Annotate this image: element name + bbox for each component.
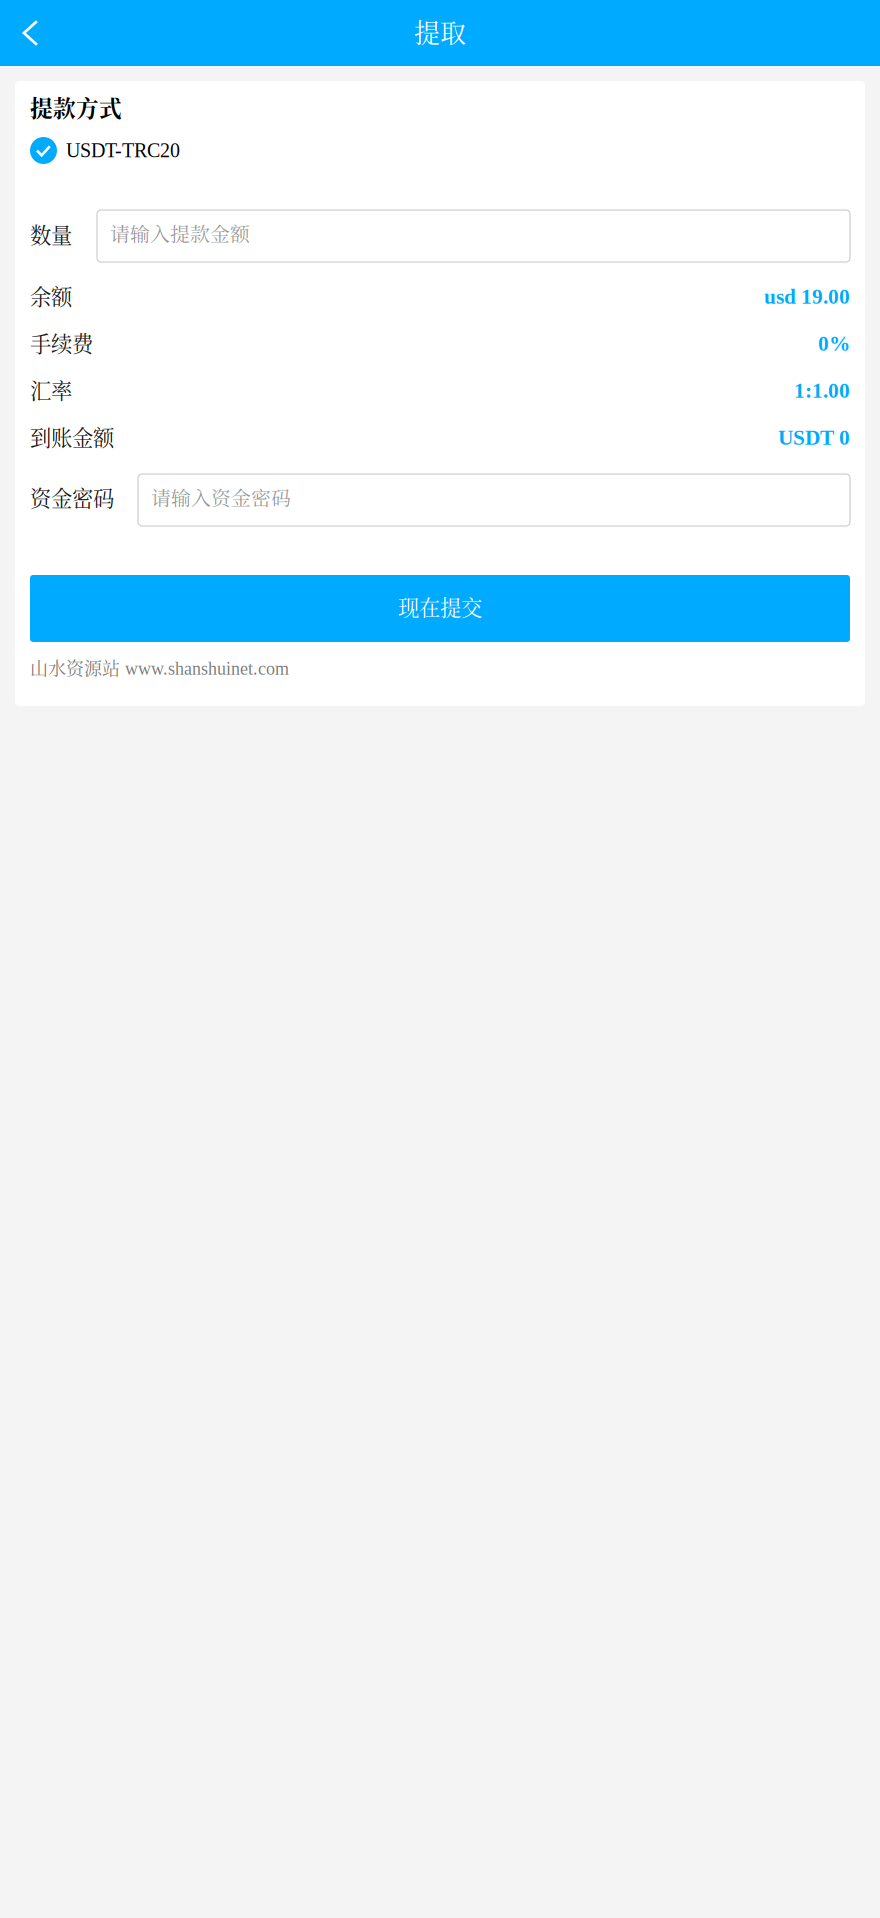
staticText: 手续费 xyxy=(30,327,93,358)
staticText: 余额 xyxy=(30,280,72,311)
staticText: 提款方式 xyxy=(30,91,122,123)
button[interactable]: 现在提交 xyxy=(30,575,850,642)
button[interactable]: USDT-TRC20 xyxy=(30,137,850,164)
button[interactable]: Back xyxy=(0,0,78,66)
staticText: USDT-TRC20 xyxy=(66,139,180,161)
staticText: 1:1.00 xyxy=(794,379,850,402)
staticText: 请输入提款金额 xyxy=(110,219,250,247)
staticText: 山水资源站 www.shanshuinet.com xyxy=(30,655,289,680)
staticText: 资金密码 xyxy=(30,482,114,512)
staticText: 0% xyxy=(818,332,850,355)
staticText: USDT 0 xyxy=(778,426,850,449)
staticText: 请输入资金密码 xyxy=(151,483,291,511)
staticText: usd 19.00 xyxy=(764,285,850,308)
staticText: 数量 xyxy=(30,219,72,249)
staticText: 提取 xyxy=(414,13,466,50)
staticText: 到账金额 xyxy=(30,421,114,452)
staticText: 汇率 xyxy=(30,374,72,405)
staticText: 现在提交 xyxy=(398,591,482,622)
